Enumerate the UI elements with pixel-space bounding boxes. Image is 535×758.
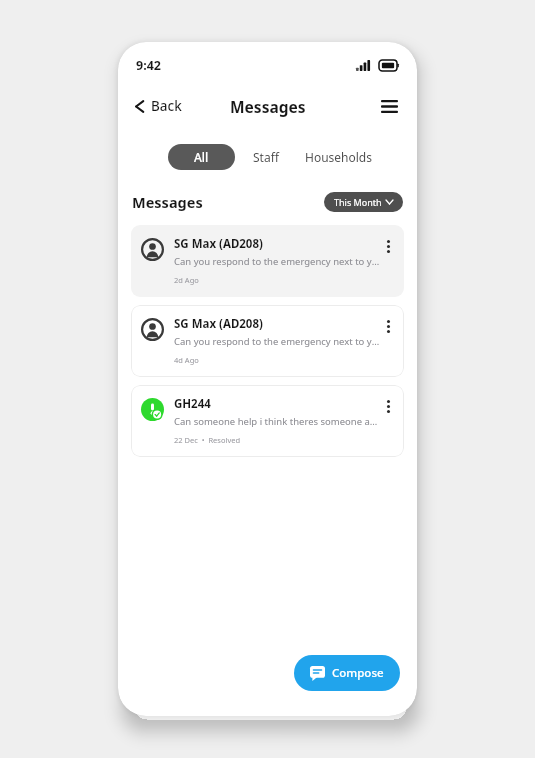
staticText: SG Max (AD208) bbox=[174, 316, 263, 332]
staticText: Back bbox=[151, 97, 182, 115]
button[interactable]: Menu bbox=[376, 95, 403, 118]
button[interactable]: This Month bbox=[324, 192, 403, 212]
button[interactable]: Back bbox=[130, 93, 187, 119]
staticText: Staff bbox=[253, 149, 279, 165]
button[interactable]: SG Max (AD208) bbox=[131, 305, 404, 377]
staticText: 22 Dec • Resolved bbox=[174, 435, 241, 445]
staticText: 4d Ago bbox=[174, 355, 199, 365]
staticText: 9:42 bbox=[136, 57, 161, 74]
staticText: Can you respond to the emergency next to… bbox=[174, 335, 380, 348]
button[interactable]: More options bbox=[380, 396, 396, 416]
button[interactable]: Compose bbox=[294, 655, 400, 691]
button[interactable]: Staff bbox=[235, 144, 297, 170]
staticText: Messages bbox=[132, 192, 203, 212]
staticText: All bbox=[194, 149, 209, 165]
staticText: 2d Ago bbox=[174, 275, 199, 285]
staticText: SG Max (AD208) bbox=[174, 236, 263, 252]
button[interactable]: More options bbox=[380, 316, 396, 336]
button[interactable]: Households bbox=[297, 144, 380, 170]
staticText: Can you respond to the emergency next to… bbox=[174, 255, 380, 268]
staticText: GH244 bbox=[174, 396, 211, 412]
staticText: Households bbox=[305, 149, 372, 165]
staticText: Can someone help i think theres someone … bbox=[174, 415, 380, 428]
staticText: This Month bbox=[334, 196, 382, 208]
button[interactable]: All bbox=[168, 144, 235, 170]
staticText: Compose bbox=[332, 665, 384, 681]
staticText: Messages bbox=[230, 96, 306, 117]
button[interactable]: GH244 bbox=[131, 385, 404, 457]
button[interactable]: More options bbox=[380, 236, 396, 256]
button[interactable]: SG Max (AD208) bbox=[131, 225, 404, 297]
